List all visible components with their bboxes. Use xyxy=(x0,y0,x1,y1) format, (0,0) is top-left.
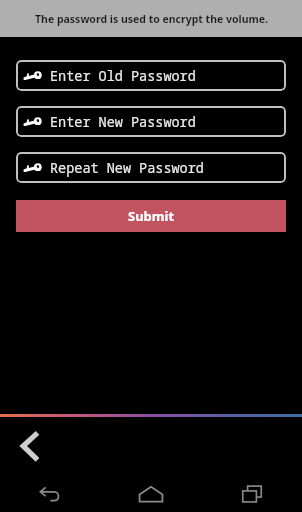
button[interactable]: Home xyxy=(100,475,201,512)
staticText: Enter New Password xyxy=(50,113,196,131)
button[interactable]: Submit xyxy=(16,200,286,232)
button[interactable]: Enter Old Password xyxy=(16,60,286,91)
button[interactable]: Repeat New Password xyxy=(16,152,286,183)
staticText: Enter Old Password xyxy=(50,67,196,85)
staticText: Submit xyxy=(128,207,175,225)
button[interactable]: Recent apps xyxy=(201,475,302,512)
staticText: Repeat New Password xyxy=(50,159,204,177)
button[interactable]: Back xyxy=(8,424,52,468)
staticText: The password is used to encrypt the volu… xyxy=(35,12,268,26)
button[interactable]: Enter New Password xyxy=(16,106,286,137)
button[interactable]: Back xyxy=(0,475,100,512)
